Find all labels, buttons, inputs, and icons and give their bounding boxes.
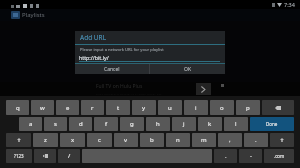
button[interactable]: g xyxy=(120,117,144,131)
button[interactable]: e xyxy=(56,100,79,115)
button[interactable]: k xyxy=(198,117,222,131)
staticText: u xyxy=(168,104,172,112)
staticText: c xyxy=(98,136,101,144)
button[interactable]: c xyxy=(87,133,112,147)
staticText: Full TV on Hulu Plus xyxy=(96,83,143,90)
button[interactable]: Advertisement xyxy=(96,83,224,95)
staticText: o xyxy=(220,104,224,112)
button[interactable]: , xyxy=(218,133,242,147)
button[interactable]: . xyxy=(214,149,237,163)
staticText: d xyxy=(79,120,83,128)
staticText: s xyxy=(54,120,57,128)
button[interactable]: q xyxy=(6,100,29,115)
button[interactable]: l xyxy=(224,117,248,131)
staticText: OK xyxy=(184,66,192,73)
button[interactable]: j xyxy=(172,117,196,131)
button[interactable]: i xyxy=(184,100,208,115)
button[interactable]: m xyxy=(192,133,216,147)
staticText: x xyxy=(71,136,75,144)
staticText: http://bit.ly/ xyxy=(79,54,109,61)
button[interactable]: Add URL xyxy=(0,21,300,82)
staticText: j xyxy=(183,120,185,128)
button[interactable]: - xyxy=(239,149,262,163)
staticText: .com xyxy=(274,153,285,159)
button[interactable]: . xyxy=(244,133,268,147)
button[interactable]: b xyxy=(140,133,164,147)
button[interactable]: ?123 xyxy=(6,149,32,163)
button[interactable]: App icon xyxy=(11,11,20,19)
staticText: v xyxy=(124,136,128,144)
staticText: e xyxy=(66,104,70,112)
button[interactable]: n xyxy=(166,133,190,147)
staticText: f xyxy=(105,120,108,128)
staticText: a xyxy=(29,120,33,128)
staticText: Please input a network URL for your play… xyxy=(80,47,164,53)
button[interactable]: Cancel xyxy=(75,64,149,74)
button[interactable]: s xyxy=(44,117,67,131)
staticText: , xyxy=(229,136,231,144)
button[interactable]: p xyxy=(236,100,260,115)
button[interactable]: h xyxy=(146,117,170,131)
button[interactable]: Shift xyxy=(270,133,294,147)
staticText: Add URL xyxy=(80,33,107,42)
button[interactable]: .com xyxy=(264,149,294,163)
staticText: k xyxy=(208,120,212,128)
staticText: . xyxy=(255,136,257,144)
button[interactable]: z xyxy=(33,133,58,147)
button[interactable]: a xyxy=(19,117,42,131)
button[interactable]: x xyxy=(60,133,85,147)
staticText: p xyxy=(246,104,250,112)
staticText: m xyxy=(201,136,207,144)
staticText: - xyxy=(250,152,252,160)
staticText: 7:34 xyxy=(284,1,295,8)
staticText: b xyxy=(150,136,154,144)
staticText: q xyxy=(16,104,20,112)
staticText: l xyxy=(235,120,237,128)
staticText: t xyxy=(117,104,120,112)
button[interactable]: v xyxy=(114,133,138,147)
button[interactable]: OK xyxy=(150,64,225,74)
staticText: n xyxy=(176,136,180,144)
staticText: Done xyxy=(266,121,278,127)
staticText: / xyxy=(68,152,71,160)
button[interactable]: w xyxy=(31,100,54,115)
staticText: ?123 xyxy=(14,153,24,159)
button[interactable]: y xyxy=(132,100,156,115)
button[interactable]: Done xyxy=(250,117,294,131)
button[interactable]: t xyxy=(106,100,130,115)
staticText: Playlists xyxy=(22,11,45,19)
staticText: y xyxy=(142,104,146,112)
button[interactable]: Emoji xyxy=(34,149,56,163)
staticText: Cancel xyxy=(104,66,120,73)
button[interactable]: u xyxy=(158,100,182,115)
button[interactable]: r xyxy=(81,100,104,115)
staticText: . xyxy=(225,152,227,160)
staticText: i xyxy=(195,104,197,112)
button[interactable]: / xyxy=(58,149,80,163)
button[interactable]: Shift xyxy=(6,133,31,147)
button[interactable]: o xyxy=(210,100,234,115)
staticText: h xyxy=(156,120,160,128)
staticText: g xyxy=(130,120,134,128)
staticText: w xyxy=(40,104,45,112)
button[interactable]: f xyxy=(94,117,118,131)
button[interactable]: Backspace xyxy=(262,100,294,115)
staticText: r xyxy=(91,104,94,112)
staticText: z xyxy=(44,136,47,144)
button[interactable]: d xyxy=(69,117,92,131)
